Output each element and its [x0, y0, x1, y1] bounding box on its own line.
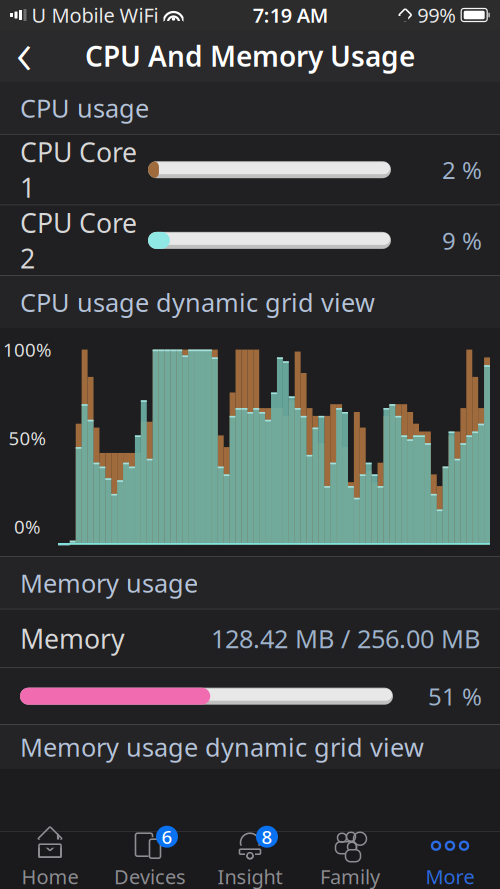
staticText: 7:19 AM	[253, 2, 329, 28]
button[interactable]: More	[400, 832, 500, 889]
staticText: Home	[21, 863, 78, 889]
staticText: U Mobile WiFi	[26, 2, 163, 28]
staticText: Memory usage	[20, 566, 198, 600]
staticText: Insight	[217, 863, 282, 889]
button[interactable]: 8	[200, 832, 300, 889]
staticText: CPU usage dynamic grid view	[20, 285, 375, 319]
staticText: 99%	[412, 2, 461, 28]
staticText: 2 %	[442, 154, 482, 186]
staticText: Devices	[114, 863, 186, 889]
staticText: CPU usage	[20, 91, 149, 125]
staticText: 0%	[14, 514, 41, 539]
staticText: 51 %	[428, 680, 482, 712]
staticText: 6	[161, 824, 172, 849]
staticText: Memory usage dynamic grid view	[20, 730, 424, 764]
staticText: CPU And Memory Usage	[85, 37, 415, 75]
staticText: 50%	[8, 426, 46, 450]
button[interactable]: Back	[0, 30, 48, 82]
staticText: CPU Core 2	[20, 205, 137, 276]
staticText: 9 %	[442, 224, 482, 256]
staticText: More	[425, 863, 474, 889]
button[interactable]: 6	[100, 832, 200, 889]
staticText: 8	[261, 824, 272, 849]
staticText: 128.42 MB / 256.00 MB	[211, 622, 480, 655]
staticText: ‹	[16, 10, 32, 92]
staticText: 100%	[3, 337, 52, 362]
button[interactable]: Family	[300, 832, 400, 889]
button[interactable]: Home	[0, 832, 100, 889]
staticText: Memory	[20, 621, 125, 656]
staticText: CPU Core 1	[20, 134, 137, 205]
staticText: Family	[320, 863, 380, 889]
